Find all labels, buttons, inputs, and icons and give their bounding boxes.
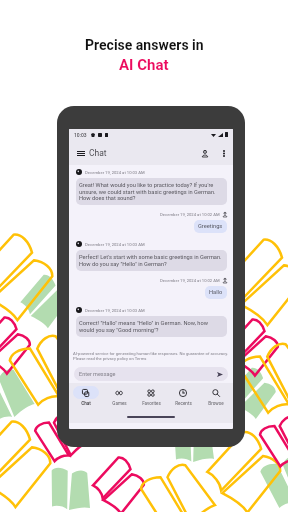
- button[interactable]: Add person: [197, 145, 213, 161]
- button[interactable]: Hallo: [205, 286, 227, 299]
- staticText: Greetings: [198, 223, 223, 230]
- staticText: Browse: [208, 401, 224, 406]
- button[interactable]: Games: [104, 383, 134, 406]
- staticText: Enter message: [79, 371, 116, 377]
- staticText: December 19, 2024 at 10:03 AM: [85, 308, 145, 313]
- staticText: Hallo: [209, 289, 223, 296]
- button[interactable]: Perfect! Let's start with some basic gre…: [76, 250, 227, 271]
- button[interactable]: Correct! "Hallo" means "Hello" in German…: [76, 316, 227, 337]
- button[interactable]: Favorites: [136, 383, 166, 406]
- button[interactable]: Menu: [73, 145, 89, 161]
- staticText: December 19, 2024 at 10:03 AM: [85, 170, 145, 175]
- staticText: Chat: [89, 148, 107, 158]
- staticText: Precise answers in: [85, 37, 204, 53]
- staticText: AI Chat: [119, 56, 169, 74]
- staticText: Favorites: [142, 401, 161, 406]
- staticText: December 19, 2024 at 10:02 AM: [160, 212, 220, 217]
- button[interactable]: Greetings: [194, 220, 227, 233]
- staticText: Chat: [81, 401, 91, 406]
- staticText: Games: [112, 401, 127, 406]
- other: Send: [217, 372, 223, 377]
- button[interactable]: Enter message: [74, 367, 228, 381]
- button[interactable]: Great! What would you like to practice t…: [76, 178, 227, 205]
- staticText: 10:03: [74, 132, 87, 138]
- button[interactable]: Browse: [201, 383, 231, 406]
- button[interactable]: More options: [217, 146, 231, 160]
- staticText: December 19, 2024 at 10:03 AM: [85, 242, 145, 247]
- staticText: Recents: [175, 401, 192, 406]
- staticText: Correct! "Hallo" means "Hello" in German…: [79, 320, 224, 333]
- staticText: AI-powered service for generating human-…: [73, 351, 229, 361]
- button[interactable]: Chat: [71, 383, 101, 406]
- staticText: December 19, 2024 at 10:02 AM: [160, 278, 220, 283]
- staticText: Great! What would you like to practice t…: [79, 182, 224, 201]
- staticText: Perfect! Let's start with some basic gre…: [79, 254, 224, 267]
- button[interactable]: Recents: [168, 383, 198, 406]
